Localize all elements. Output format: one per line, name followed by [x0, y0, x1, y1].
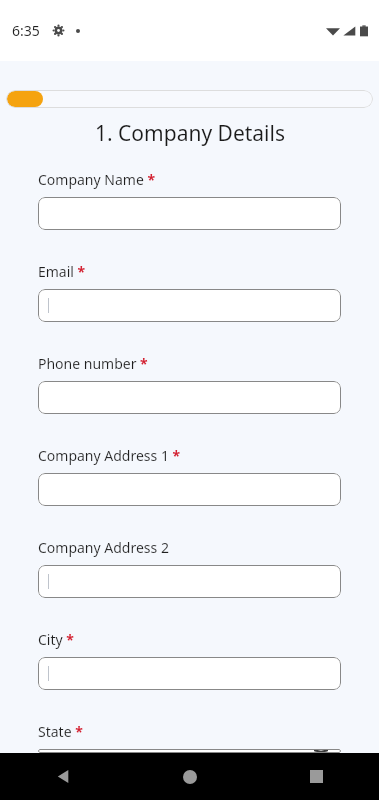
- staticText: Phone number *: [38, 354, 148, 373]
- button[interactable]: [38, 749, 341, 753]
- button[interactable]: [38, 197, 341, 230]
- staticText: Email *: [38, 262, 86, 281]
- staticText: Company Address 2: [38, 538, 169, 557]
- staticText: Company Address 1 *: [38, 446, 181, 465]
- button[interactable]: [38, 657, 341, 690]
- button[interactable]: [6, 90, 373, 108]
- staticText: City *: [38, 630, 74, 649]
- button[interactable]: Home: [127, 753, 253, 800]
- staticText: 6:35: [12, 21, 40, 40]
- staticText: Company Name *: [38, 170, 156, 189]
- button[interactable]: [38, 381, 341, 414]
- button[interactable]: Back: [0, 753, 127, 800]
- staticText: 1. Company Details: [95, 119, 285, 148]
- button[interactable]: Recent apps: [253, 753, 379, 800]
- button[interactable]: [38, 289, 341, 322]
- button[interactable]: [38, 565, 341, 598]
- button[interactable]: [38, 473, 341, 506]
- staticText: State *: [38, 722, 83, 741]
